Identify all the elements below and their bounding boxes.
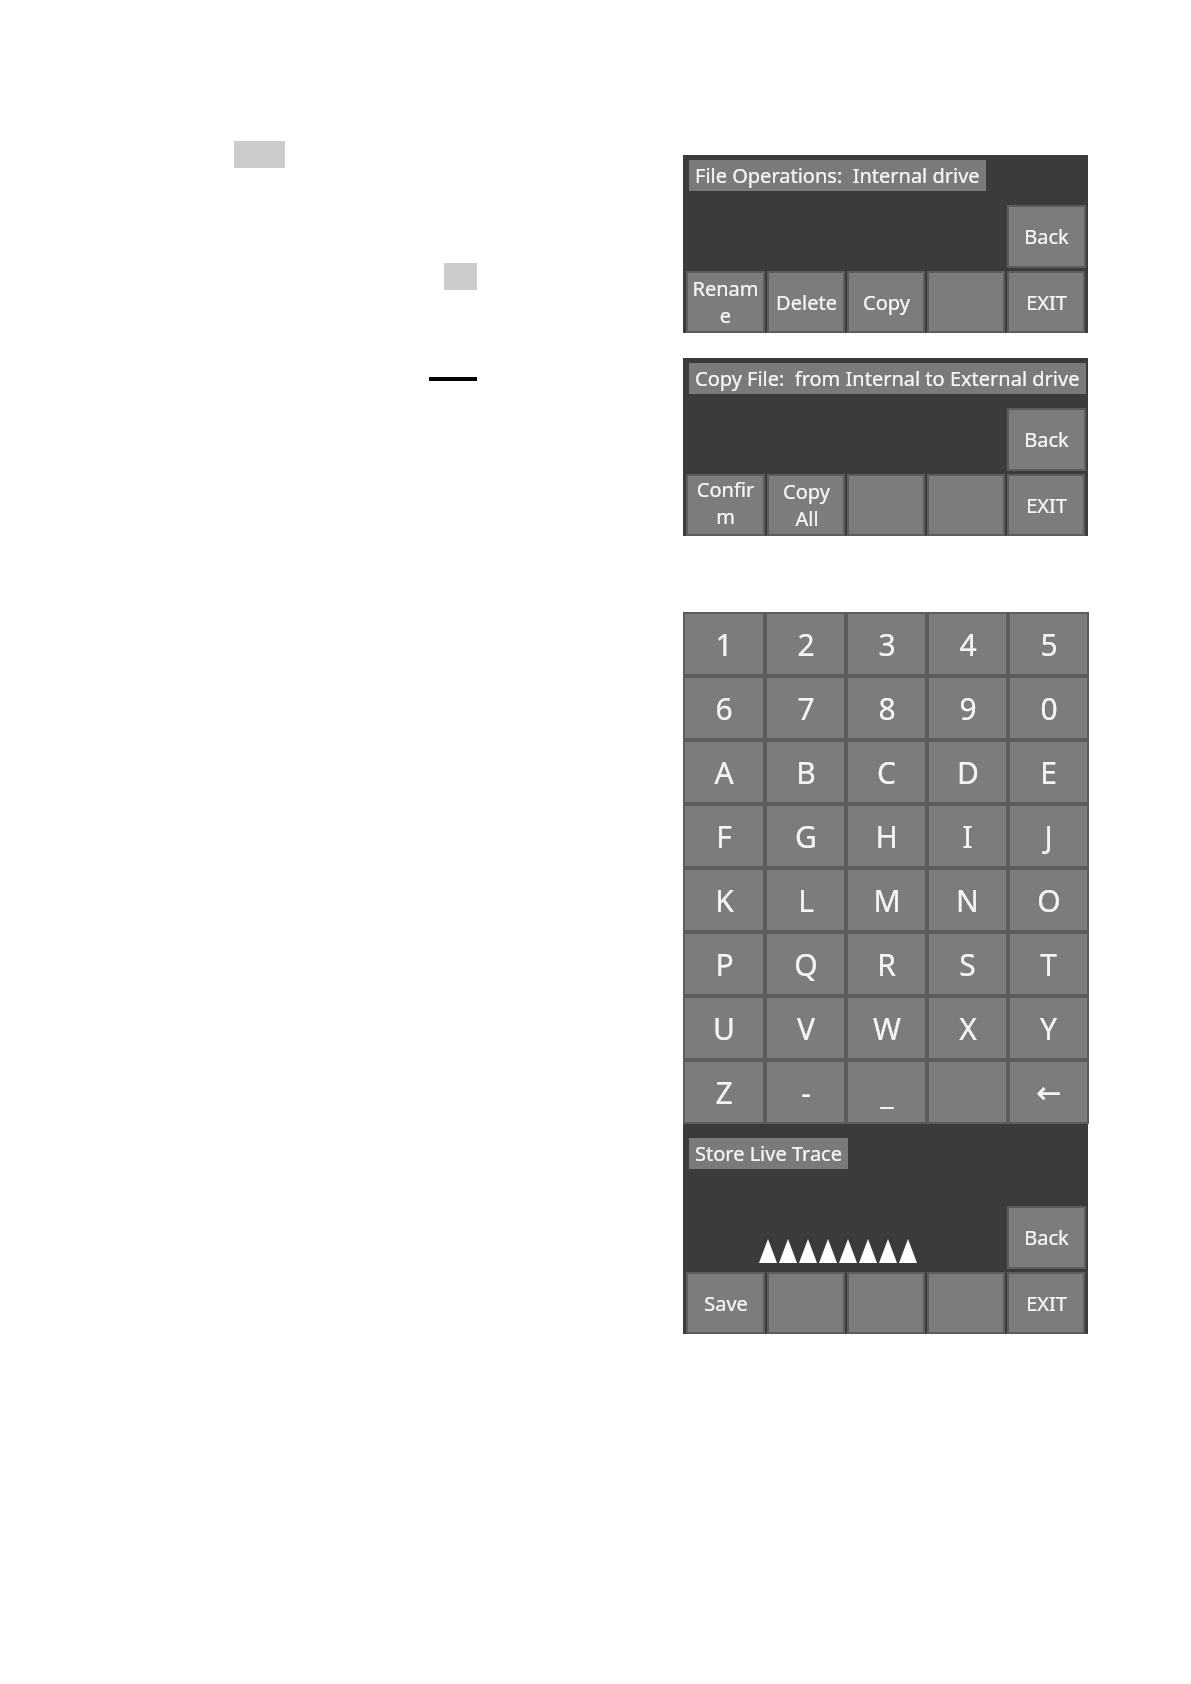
button[interactable]: N <box>927 868 1008 932</box>
button[interactable]: M <box>846 868 927 932</box>
button[interactable]: Z <box>683 1060 765 1124</box>
staticText: Y <box>1040 1008 1057 1049</box>
button[interactable] <box>847 1272 925 1334</box>
staticText: I <box>962 816 973 857</box>
button[interactable]: W <box>846 996 927 1060</box>
staticText: Store Live Trace <box>695 1140 842 1167</box>
button[interactable]: U <box>683 996 765 1060</box>
staticText: Copy <box>863 289 910 316</box>
staticText: S <box>959 944 976 985</box>
button[interactable]: Rename <box>686 271 765 333</box>
button[interactable] <box>927 1272 1005 1334</box>
button[interactable]: X <box>927 996 1008 1060</box>
staticText: F <box>716 816 732 857</box>
staticText: L <box>798 880 814 921</box>
button[interactable]: D <box>927 740 1008 804</box>
staticText: 8 <box>878 688 896 729</box>
staticText: ← <box>1036 1075 1062 1110</box>
staticText: Back <box>1024 223 1069 250</box>
button[interactable]: Back <box>1007 1206 1086 1269</box>
button[interactable] <box>927 271 1005 333</box>
staticText: T <box>1040 944 1057 985</box>
button[interactable]: T <box>1008 932 1089 996</box>
button[interactable]: F <box>683 804 765 868</box>
button[interactable]: _ <box>846 1060 927 1124</box>
button[interactable]: C <box>846 740 927 804</box>
staticText: Delete <box>776 289 837 316</box>
button[interactable]: EXIT <box>1007 474 1085 536</box>
staticText: K <box>715 880 734 921</box>
button[interactable]: I <box>927 804 1008 868</box>
button[interactable]: Confirm <box>686 474 765 536</box>
button[interactable]: 4 <box>927 612 1008 676</box>
button[interactable] <box>847 474 925 536</box>
button[interactable]: EXIT <box>1007 271 1085 333</box>
staticText: 7 <box>797 688 815 729</box>
button[interactable]: 8 <box>846 676 927 740</box>
button[interactable]: Back <box>1007 408 1086 471</box>
staticText: N <box>956 880 979 921</box>
button[interactable]: A <box>683 740 765 804</box>
staticText: - <box>801 1072 811 1113</box>
button[interactable]: V <box>765 996 846 1060</box>
button[interactable]: 2 <box>765 612 846 676</box>
staticText: V <box>797 1008 815 1049</box>
staticText: X <box>959 1008 977 1049</box>
staticText: EXIT <box>1026 289 1067 316</box>
button[interactable]: Save <box>686 1272 765 1334</box>
button[interactable]: 5 <box>1008 612 1089 676</box>
button[interactable]: O <box>1008 868 1089 932</box>
staticText: H <box>875 816 898 857</box>
button[interactable]: Copy <box>847 271 925 333</box>
button[interactable] <box>927 1060 1008 1124</box>
button[interactable]: Delete <box>767 271 845 333</box>
button[interactable]: J <box>1008 804 1089 868</box>
button[interactable]: 1 <box>683 612 765 676</box>
button[interactable]: 0 <box>1008 676 1089 740</box>
button[interactable]: Copy <box>767 474 845 536</box>
staticText: 4 <box>959 624 977 665</box>
button[interactable]: S <box>927 932 1008 996</box>
button[interactable]: E <box>1008 740 1089 804</box>
button[interactable]: 6 <box>683 676 765 740</box>
button[interactable]: Backspace <box>1008 1060 1089 1124</box>
button[interactable]: Q <box>765 932 846 996</box>
button[interactable]: B <box>765 740 846 804</box>
staticText: D <box>957 752 979 793</box>
button[interactable] <box>927 474 1005 536</box>
staticText: _ <box>880 1072 894 1113</box>
button[interactable]: H <box>846 804 927 868</box>
button[interactable]: Back <box>1007 205 1086 268</box>
button[interactable]: EXIT <box>1007 1272 1085 1334</box>
staticText: Confirm <box>688 476 763 530</box>
button[interactable]: R <box>846 932 927 996</box>
staticText: G <box>795 816 817 857</box>
button[interactable]: L <box>765 868 846 932</box>
button[interactable]: P <box>683 932 765 996</box>
button[interactable]: Y <box>1008 996 1089 1060</box>
staticText: Z <box>715 1072 733 1113</box>
button[interactable] <box>767 1272 845 1334</box>
staticText: Rename <box>688 275 763 329</box>
staticText: B <box>796 752 816 793</box>
button[interactable]: 7 <box>765 676 846 740</box>
staticText: Back <box>1024 426 1069 453</box>
button[interactable]: G <box>765 804 846 868</box>
staticText: EXIT <box>1026 492 1067 519</box>
staticText: C <box>877 752 896 793</box>
staticText: 9 <box>959 688 977 729</box>
button[interactable]: 3 <box>846 612 927 676</box>
staticText: Copy <box>783 478 830 505</box>
staticText: Q <box>794 944 818 985</box>
staticText: Save <box>704 1290 748 1317</box>
button[interactable]: 9 <box>927 676 1008 740</box>
staticText: 3 <box>878 624 896 665</box>
staticText: M <box>873 880 901 921</box>
button[interactable]: - <box>765 1060 846 1124</box>
staticText: 5 <box>1040 624 1058 665</box>
button[interactable]: K <box>683 868 765 932</box>
staticText: U <box>713 1008 735 1049</box>
staticText: All <box>795 505 819 532</box>
staticText: P <box>715 944 734 985</box>
